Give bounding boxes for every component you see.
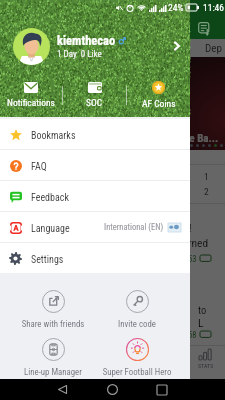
button[interactable]: Recents — [150, 379, 174, 400]
staticText: International (EN) — [104, 222, 164, 232]
button[interactable]: Home — [100, 379, 124, 400]
staticText: kiemthecao — [57, 33, 116, 48]
staticText: 11:46 — [203, 2, 224, 13]
button[interactable]: kiemthecao — [0, 27, 190, 65]
staticText: L — [198, 316, 204, 329]
staticText: Settings — [31, 254, 64, 266]
staticText: to — [198, 304, 207, 316]
staticText: AF Coins — [142, 98, 176, 109]
button[interactable]: Feedback — [0, 181, 190, 211]
staticText: 58 — [188, 330, 197, 340]
button[interactable]: Back — [50, 379, 74, 400]
staticText: 53 — [188, 254, 197, 264]
button[interactable]: Super Football Hero — [95, 338, 179, 386]
button[interactable]: Share with friends — [11, 290, 95, 338]
staticText: Share with friends — [11, 319, 95, 329]
staticText: Notifications — [7, 97, 55, 108]
staticText: te Ba... — [186, 132, 219, 145]
staticText: Feedback — [31, 192, 69, 204]
staticText: 2 — [204, 186, 209, 197]
staticText: Language — [31, 223, 70, 235]
staticText: 1 — [204, 171, 209, 182]
staticText: ! — [189, 222, 192, 234]
button[interactable]: Settings — [0, 243, 190, 273]
staticText: Invite code — [95, 319, 179, 329]
staticText: FAQ — [31, 161, 47, 173]
button[interactable]: SOC — [63, 76, 126, 114]
button[interactable]: FAQ — [0, 150, 190, 180]
button[interactable]: AF Coins — [127, 76, 190, 114]
button[interactable]: Line-up Manager — [11, 338, 95, 386]
staticText: 1 Day 0 Like — [57, 49, 102, 60]
staticText: 24% — [168, 2, 184, 13]
staticText: Line-up Manager — [11, 367, 95, 377]
staticText: rned — [188, 236, 209, 249]
staticText: STATS — [198, 362, 214, 369]
staticText: Dep — [205, 42, 222, 55]
button[interactable]: Bookmarks — [0, 119, 190, 149]
staticText: Bookmarks — [31, 130, 76, 142]
button[interactable]: Language — [0, 212, 190, 242]
staticText: SOC — [86, 97, 103, 108]
button[interactable]: Invite code — [95, 290, 179, 338]
button[interactable]: Notifications — [0, 76, 62, 114]
staticText: Super Football Hero — [95, 367, 179, 377]
